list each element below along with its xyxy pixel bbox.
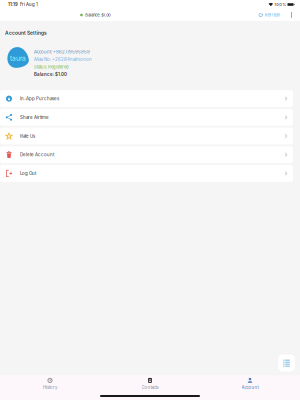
button[interactable]: Refresh	[258, 12, 280, 18]
staticText: Balance: $1.00	[85, 13, 110, 17]
button[interactable]: More options	[289, 11, 293, 19]
staticText: Share Airtime	[20, 115, 49, 120]
staticText: taura	[10, 54, 26, 62]
staticText: Alias No: +26284nalmonon	[34, 57, 92, 62]
staticText: Status: Registered	[34, 64, 69, 70]
staticText: Delete Account	[20, 152, 54, 157]
button[interactable]: Share Airtime	[0, 109, 293, 126]
staticText: 100%	[273, 2, 286, 7]
staticText: Account	[241, 385, 258, 390]
button[interactable]: History	[0, 373, 100, 393]
staticText: Refresh	[264, 12, 280, 18]
button[interactable]: Delete Account	[0, 146, 293, 163]
staticText: Account: +962779595959	[34, 49, 90, 55]
button[interactable]: In-App Purchases	[0, 90, 293, 107]
staticText: Log Out	[20, 171, 36, 176]
button[interactable]: New request	[278, 354, 295, 371]
button[interactable]: Log Out	[0, 165, 293, 182]
button[interactable]: Account	[200, 373, 300, 393]
staticText: In-App Purchases	[20, 96, 59, 101]
staticText: 11:19	[8, 2, 18, 7]
staticText: Account Settings	[5, 30, 47, 36]
staticText: Fri Aug 1	[18, 2, 38, 7]
button[interactable]: Rate Us	[0, 128, 293, 144]
button[interactable]: Contacts	[100, 373, 200, 393]
staticText: Balance: $1.00	[34, 72, 67, 77]
staticText: Contacts	[141, 385, 158, 390]
staticText: History	[43, 385, 57, 390]
staticText: Rate Us	[20, 133, 35, 139]
